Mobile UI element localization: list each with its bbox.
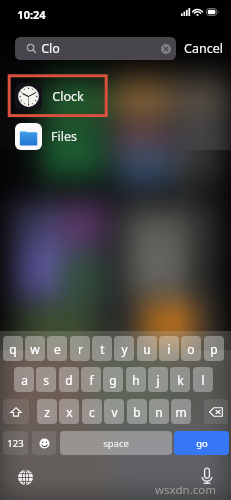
staticText: y xyxy=(121,341,128,357)
button[interactable]: go xyxy=(174,431,229,455)
staticText: q xyxy=(9,341,17,357)
button[interactable]: Shift xyxy=(3,399,29,424)
button[interactable]: l xyxy=(193,367,213,392)
button[interactable]: n xyxy=(149,399,169,424)
button[interactable]: z xyxy=(37,399,57,424)
staticText: c xyxy=(89,404,95,420)
button[interactable]: Files xyxy=(0,121,231,151)
staticText: w xyxy=(30,341,40,357)
staticText: 10:24 xyxy=(17,7,46,22)
staticText: x xyxy=(66,404,73,420)
staticText: go xyxy=(196,437,208,450)
staticText: h xyxy=(132,372,140,388)
staticText: e xyxy=(54,341,61,357)
button[interactable]: e xyxy=(47,336,67,361)
button[interactable]: v xyxy=(104,399,124,424)
staticText: j xyxy=(156,372,160,388)
staticText: d xyxy=(65,372,73,388)
button[interactable]: h xyxy=(126,367,146,392)
button[interactable]: t xyxy=(92,336,112,361)
button[interactable]: j xyxy=(148,367,168,392)
button[interactable]: d xyxy=(59,367,79,392)
button[interactable]: 123 xyxy=(3,431,28,455)
button[interactable]: g xyxy=(103,367,123,392)
button[interactable]: w xyxy=(25,336,45,361)
staticText: u xyxy=(143,341,151,357)
staticText: v xyxy=(111,404,118,420)
staticText: Clo xyxy=(41,40,60,57)
button[interactable]: u xyxy=(137,336,157,361)
staticText: k xyxy=(177,372,184,388)
button[interactable]: b xyxy=(127,399,147,424)
staticText: n xyxy=(155,404,163,420)
button[interactable]: f xyxy=(81,367,101,392)
staticText: m xyxy=(175,404,187,420)
button[interactable]: m xyxy=(171,399,191,424)
button[interactable]: p xyxy=(204,336,224,361)
staticText: z xyxy=(44,404,50,420)
button[interactable]: Clo xyxy=(15,37,176,60)
staticText: o xyxy=(187,341,195,357)
button[interactable]: r xyxy=(70,336,90,361)
button[interactable]: Cancel xyxy=(180,37,226,60)
staticText: f xyxy=(89,372,94,388)
staticText: t xyxy=(100,341,105,357)
button[interactable]: Clear text xyxy=(161,44,171,54)
staticText: Files xyxy=(51,128,77,145)
staticText: wsxdn.com xyxy=(155,482,216,498)
staticText: b xyxy=(133,404,141,420)
button[interactable]: y xyxy=(114,336,134,361)
button[interactable]: space xyxy=(60,431,172,455)
staticText: a xyxy=(21,372,28,388)
button[interactable]: s xyxy=(36,367,56,392)
button[interactable]: Backspace xyxy=(204,399,228,424)
button[interactable]: a xyxy=(14,367,34,392)
staticText: p xyxy=(210,341,218,357)
button[interactable]: c xyxy=(82,399,102,424)
button[interactable]: o xyxy=(181,336,201,361)
button[interactable]: Emoji xyxy=(32,431,56,455)
staticText: r xyxy=(78,341,83,357)
staticText: l xyxy=(201,372,205,388)
staticText: Clock xyxy=(52,88,84,105)
staticText: g xyxy=(109,372,117,388)
staticText: 123 xyxy=(7,437,24,450)
button[interactable]: i xyxy=(159,336,179,361)
button[interactable]: k xyxy=(170,367,190,392)
staticText: s xyxy=(43,372,49,388)
button[interactable]: Clock xyxy=(0,80,231,112)
staticText: Cancel xyxy=(184,40,223,57)
button[interactable]: Dictation xyxy=(196,465,218,487)
button[interactable]: q xyxy=(3,336,23,361)
staticText: space xyxy=(103,437,129,450)
button[interactable]: x xyxy=(59,399,79,424)
staticText: i xyxy=(167,341,171,357)
button[interactable]: Change keyboard xyxy=(14,466,36,488)
